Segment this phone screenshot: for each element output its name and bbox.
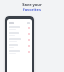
- button[interactable]: Favorite: [7, 43, 32, 49]
- button[interactable]: Favorite: [7, 25, 32, 31]
- button[interactable]: Favorite: [7, 37, 32, 43]
- staticText: favorites: [23, 7, 41, 12]
- button[interactable]: Favorite: [7, 31, 32, 37]
- button[interactable]: Favorite: [7, 49, 32, 55]
- staticText: Save your: [22, 2, 42, 7]
